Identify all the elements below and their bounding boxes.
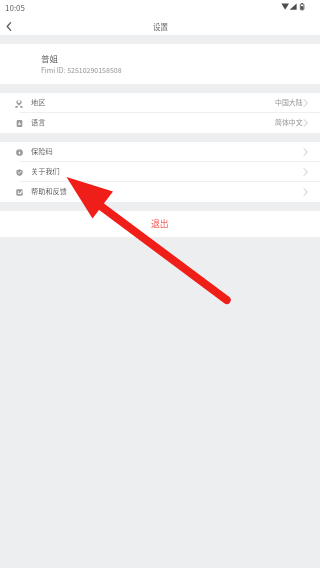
button[interactable]: Back: [0, 18, 17, 35]
staticText: 设置: [153, 21, 168, 32]
staticText: 语言: [31, 117, 46, 127]
staticText: 地区: [31, 97, 46, 107]
staticText: 关于我们: [31, 166, 60, 176]
button[interactable]: 保险码: [0, 142, 320, 162]
button[interactable]: 地区: [0, 93, 320, 113]
staticText: 退出: [151, 217, 169, 230]
staticText: 保险码: [31, 146, 53, 156]
staticText: 帮助和反馈: [31, 186, 67, 196]
staticText: 简体中文: [275, 117, 303, 127]
staticText: Fimi ID: 52510290158508: [41, 65, 122, 75]
button[interactable]: 帮助和反馈: [0, 182, 320, 202]
staticText: 10:05: [5, 2, 25, 14]
button[interactable]: 退出: [0, 211, 320, 237]
staticText: 中国大陆: [275, 97, 303, 107]
staticText: 普姐: [41, 52, 59, 64]
button[interactable]: 语言: [0, 113, 320, 133]
button[interactable]: 普姐: [0, 44, 320, 84]
button[interactable]: 关于我们: [0, 162, 320, 182]
